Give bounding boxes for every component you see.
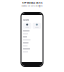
staticText: Tableau de bord intelligent [21,5,43,7]
button[interactable] [23,23,31,29]
staticText: Accueil [23,19,28,21]
button[interactable] [33,23,41,29]
button[interactable]: Accueil [21,15,42,21]
staticText: APP MOBILE SAAS [22,2,42,4]
